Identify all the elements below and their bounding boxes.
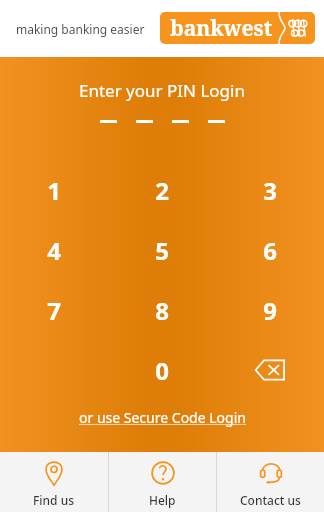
button[interactable]: 4 bbox=[0, 220, 108, 280]
button[interactable]: 6 bbox=[216, 220, 324, 280]
staticText: Find us bbox=[33, 492, 75, 508]
staticText: making banking easier bbox=[16, 21, 145, 37]
button[interactable]: 1 bbox=[0, 160, 108, 220]
staticText: Help bbox=[149, 492, 176, 508]
button[interactable]: 2 bbox=[108, 160, 216, 220]
button[interactable]: Help bbox=[109, 452, 216, 512]
staticText: Contact us bbox=[240, 492, 301, 508]
button[interactable]: Backspace bbox=[216, 340, 324, 400]
button[interactable]: Find us bbox=[0, 452, 108, 512]
staticText: 4 bbox=[47, 234, 61, 267]
button[interactable]: Contact us bbox=[217, 452, 324, 512]
staticText: 7 bbox=[47, 294, 61, 327]
button[interactable]: 3 bbox=[216, 160, 324, 220]
staticText: 5 bbox=[155, 234, 169, 267]
button[interactable]: 8 bbox=[108, 280, 216, 340]
staticText: 2 bbox=[155, 174, 169, 207]
button[interactable]: 0 bbox=[108, 340, 216, 400]
staticText: 6 bbox=[263, 234, 277, 267]
staticText: 8 bbox=[155, 294, 169, 327]
staticText: 1 bbox=[47, 174, 61, 207]
button[interactable]: 7 bbox=[0, 280, 108, 340]
staticText: Enter your PIN Login bbox=[79, 79, 245, 102]
button[interactable]: or use Secure Code Login bbox=[73, 405, 252, 430]
staticText: 3 bbox=[263, 174, 277, 207]
button[interactable]: 5 bbox=[108, 220, 216, 280]
staticText: bankwest bbox=[170, 14, 273, 43]
staticText: or use Secure Code Login bbox=[79, 408, 246, 427]
button[interactable]: 9 bbox=[216, 280, 324, 340]
staticText: 0 bbox=[155, 354, 169, 387]
staticText: 9 bbox=[263, 294, 277, 327]
